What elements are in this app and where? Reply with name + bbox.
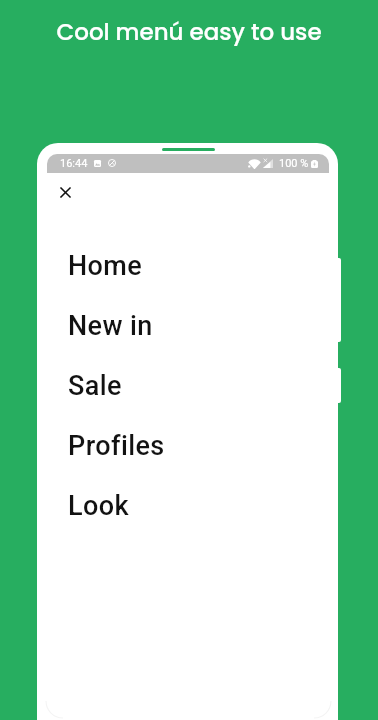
button[interactable]: Home <box>37 236 338 296</box>
staticText: Sale <box>68 370 122 402</box>
staticText: Cool menú easy to use <box>0 16 378 48</box>
staticText: 16:44 <box>60 157 88 170</box>
staticText: 100 % <box>279 157 309 170</box>
button[interactable]: Close menu <box>51 178 79 206</box>
button[interactable]: Profiles <box>37 416 338 476</box>
button[interactable]: Look <box>37 476 338 536</box>
button[interactable]: Sale <box>37 356 338 416</box>
button[interactable]: New in <box>37 296 338 356</box>
staticText: Home <box>68 250 143 282</box>
staticText: New in <box>68 310 153 342</box>
staticText: Look <box>68 490 129 522</box>
staticText: Profiles <box>68 430 165 462</box>
